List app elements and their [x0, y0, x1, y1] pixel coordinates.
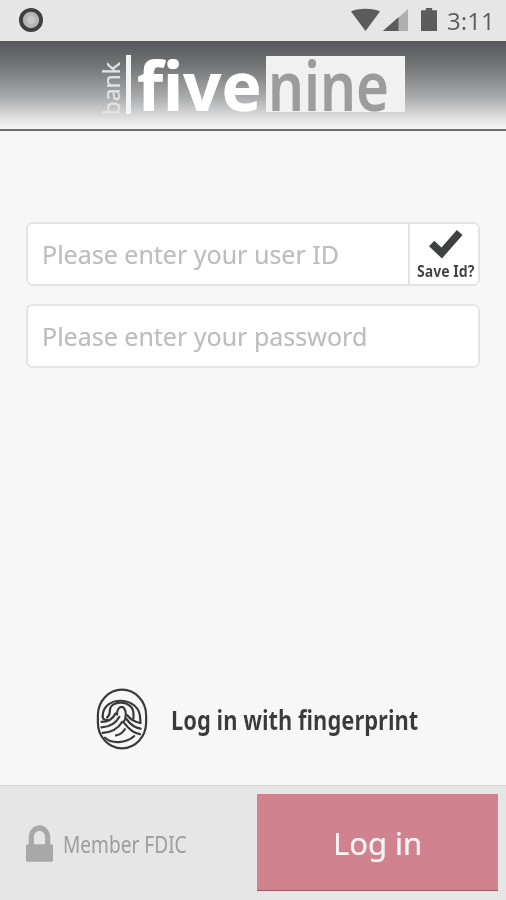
staticText: Please enter your password: [42, 319, 368, 353]
staticText: Please enter your user ID: [42, 237, 340, 271]
staticText: bank: [94, 61, 125, 115]
other: Notification: [19, 8, 43, 32]
staticText: Save Id?: [417, 260, 475, 282]
button[interactable]: Please enter your user ID: [26, 222, 408, 286]
staticText: 3:11: [447, 4, 495, 37]
button[interactable]: Log in with fingerprint: [96, 688, 418, 750]
button[interactable]: Save Id?: [410, 222, 480, 286]
button[interactable]: Log in: [257, 794, 498, 891]
staticText: five: [137, 38, 263, 128]
staticText: Log in with fingerprint: [171, 702, 419, 737]
staticText: Log in: [333, 822, 423, 864]
staticText: nine: [268, 38, 389, 128]
button[interactable]: Please enter your password: [26, 304, 480, 368]
staticText: Member FDIC: [63, 828, 187, 859]
button[interactable]: Member FDIC: [26, 814, 186, 872]
